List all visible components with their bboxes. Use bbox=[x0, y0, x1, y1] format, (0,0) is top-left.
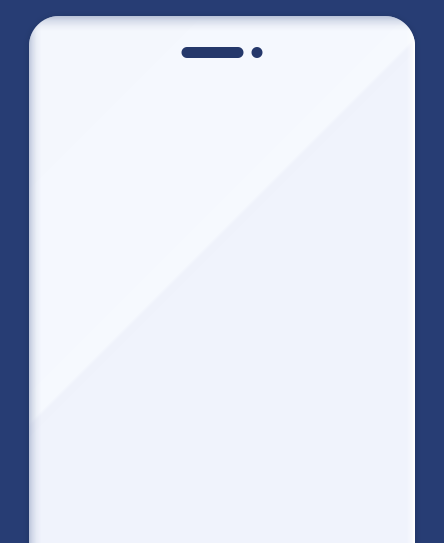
button[interactable]: Device screen bbox=[29, 16, 415, 543]
